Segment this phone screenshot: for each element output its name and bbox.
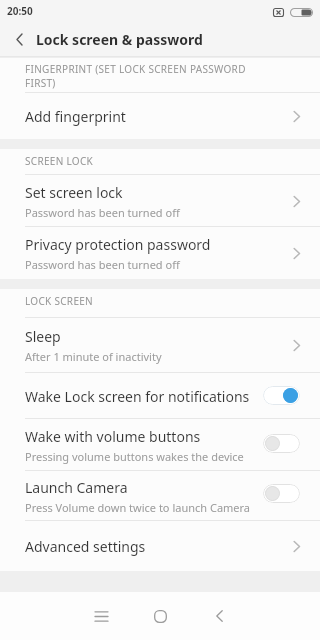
staticText: Press Volume down twice to launch Camera xyxy=(25,500,251,515)
button[interactable] xyxy=(88,603,114,629)
button[interactable] xyxy=(147,603,173,629)
staticText: Sleep xyxy=(25,327,61,346)
staticText: After 1 minute of inactivity xyxy=(25,349,162,364)
staticText: 20:50 xyxy=(7,4,33,18)
button[interactable]: Privacy protection password xyxy=(0,227,320,279)
button[interactable] xyxy=(9,28,29,50)
staticText: Advanced settings xyxy=(25,537,146,556)
staticText: Pressing volume buttons wakes the device xyxy=(25,449,244,464)
staticText: Privacy protection password xyxy=(25,235,211,254)
button[interactable] xyxy=(206,603,232,629)
button[interactable]: Add fingerprint xyxy=(0,93,320,139)
button[interactable] xyxy=(263,434,300,453)
staticText: SCREEN LOCK xyxy=(25,154,94,168)
button[interactable]: Sleep xyxy=(0,318,320,373)
staticText: LOCK SCREEN xyxy=(25,294,94,308)
staticText: Wake Lock screen for notifications xyxy=(25,387,250,406)
button[interactable]: Advanced settings xyxy=(0,521,320,571)
button[interactable]: Wake with volume buttons xyxy=(0,419,320,471)
staticText: Set screen lock xyxy=(25,183,123,202)
button[interactable] xyxy=(263,386,300,405)
staticText: Password has been turned off xyxy=(25,205,180,220)
button[interactable]: Launch Camera xyxy=(0,471,320,521)
staticText: Password has been turned off xyxy=(25,257,180,272)
staticText: Lock screen & password xyxy=(36,30,203,49)
staticText: Launch Camera xyxy=(25,478,128,497)
staticText: Add fingerprint xyxy=(25,107,126,126)
button[interactable]: Wake Lock screen for notifications xyxy=(0,373,320,419)
staticText: FINGERPRINT (SET LOCK SCREEN PASSWORD FI… xyxy=(25,62,246,90)
staticText: Wake with volume buttons xyxy=(25,427,201,446)
button[interactable] xyxy=(263,484,300,503)
button[interactable]: Set screen lock xyxy=(0,175,320,227)
